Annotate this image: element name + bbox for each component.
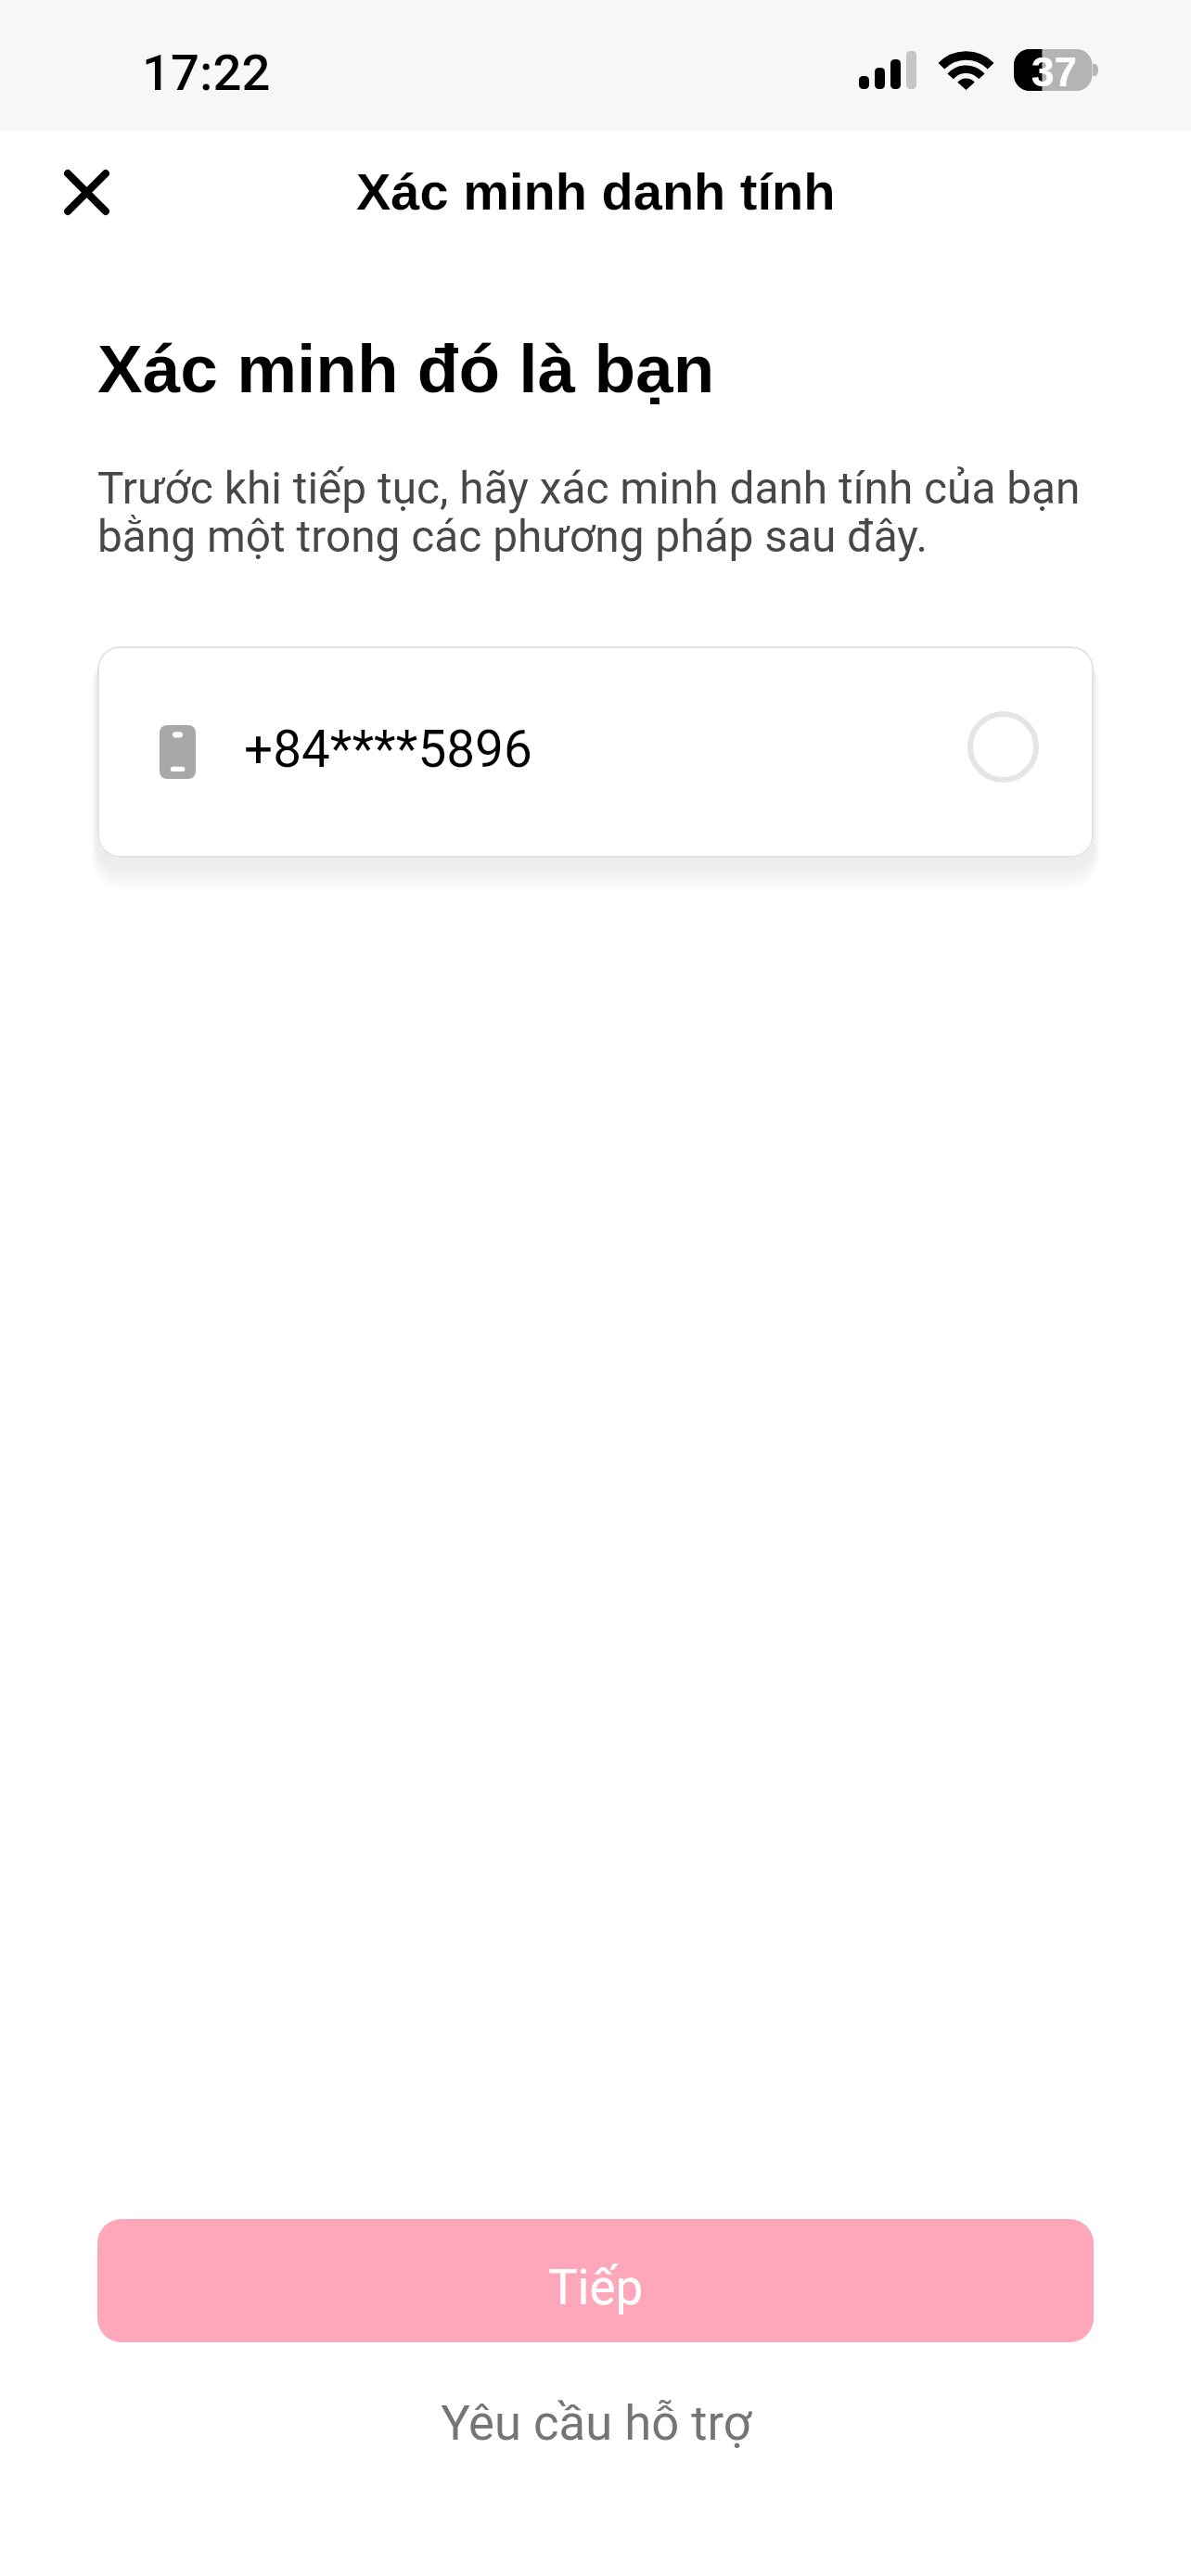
staticText: 37 bbox=[1031, 49, 1077, 91]
staticText: Trước khi tiếp tục, hãy xác minh danh tí… bbox=[97, 463, 1111, 563]
button[interactable]: +84****5896 bbox=[97, 646, 1094, 858]
button[interactable]: Tiếp bbox=[97, 2219, 1094, 2342]
button[interactable]: Yêu cầu hỗ trợ bbox=[0, 2382, 1191, 2469]
staticText: +84****5896 bbox=[244, 720, 532, 779]
staticText: Tiếp bbox=[548, 2259, 644, 2316]
staticText: Xác minh đó là bạn bbox=[97, 331, 715, 407]
button[interactable]: Đóng bbox=[42, 147, 131, 236]
other: Chọn số điện thoại bbox=[967, 711, 1039, 783]
staticText: 17:22 bbox=[142, 43, 271, 102]
staticText: Yêu cầu hỗ trợ bbox=[441, 2394, 751, 2452]
staticText: Xác minh danh tính bbox=[356, 162, 836, 221]
